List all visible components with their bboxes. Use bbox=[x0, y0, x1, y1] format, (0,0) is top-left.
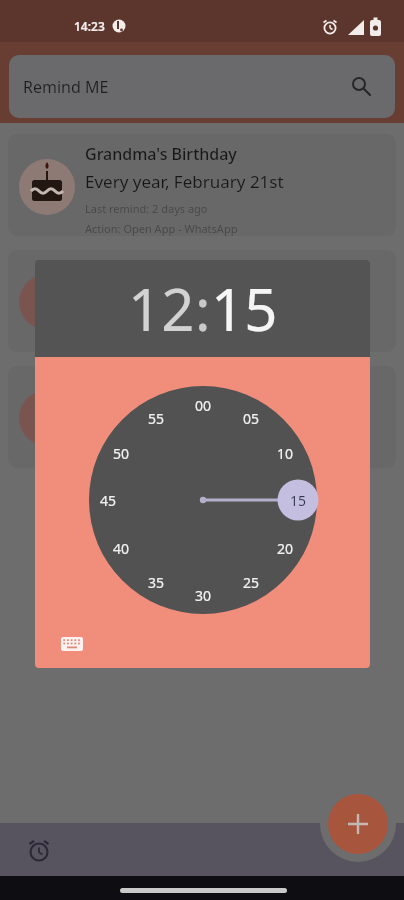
staticText: 14:23 bbox=[74, 18, 105, 34]
staticText: Last remind: 2 days ago bbox=[85, 201, 208, 216]
staticText: Action: Open App - WhatsApp bbox=[85, 221, 238, 236]
staticText: 20 bbox=[277, 539, 294, 558]
button[interactable]: Remind ME bbox=[9, 55, 395, 118]
staticText: 45 bbox=[100, 491, 117, 510]
button[interactable] bbox=[328, 794, 388, 854]
staticText: 12 bbox=[128, 269, 195, 348]
button[interactable] bbox=[53, 630, 85, 656]
staticText: 00 bbox=[195, 396, 212, 415]
staticText: Remind ME bbox=[23, 76, 109, 98]
staticText: 15 bbox=[211, 269, 278, 348]
staticText: Every year, February 21st bbox=[85, 170, 284, 193]
staticText: 50 bbox=[113, 444, 130, 463]
staticText: 30 bbox=[195, 586, 212, 605]
button[interactable] bbox=[8, 250, 396, 352]
button[interactable] bbox=[20, 833, 58, 871]
staticText: 40 bbox=[113, 539, 130, 558]
staticText: : bbox=[195, 269, 211, 348]
button[interactable] bbox=[8, 366, 396, 468]
staticText: 35 bbox=[148, 573, 165, 592]
staticText: 05 bbox=[243, 409, 260, 428]
button[interactable]: Grandma's Birthday bbox=[8, 134, 396, 236]
staticText: Grandma's Birthday bbox=[85, 143, 237, 165]
staticText: 10 bbox=[277, 444, 294, 463]
staticText: 55 bbox=[148, 409, 165, 428]
staticText: 15 bbox=[290, 491, 307, 510]
staticText: 25 bbox=[243, 573, 260, 592]
